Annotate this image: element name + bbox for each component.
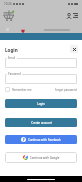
staticText: Remember me (12, 88, 32, 92)
staticText: Login (37, 102, 45, 106)
staticText: Continue with Facebook (28, 138, 61, 142)
staticText: Continue with Google (30, 156, 60, 160)
button[interactable]: Menu (72, 12, 79, 19)
staticText: Email (8, 56, 16, 60)
button[interactable]: Account (65, 12, 72, 19)
staticText: 10:26 (4, 2, 12, 6)
button[interactable]: forgot password (55, 88, 77, 92)
button[interactable]: Home (3, 10, 14, 21)
button[interactable] (5, 58, 77, 68)
button[interactable]: Continue with Facebook (5, 135, 77, 144)
staticText: Create account (31, 121, 52, 125)
button[interactable]: Create account (5, 118, 77, 127)
staticText: Login (5, 47, 18, 53)
button[interactable]: Remember me (5, 87, 32, 92)
staticText: Password (8, 72, 21, 76)
button[interactable]: Close (70, 45, 78, 53)
button[interactable]: Login (5, 99, 77, 108)
button[interactable] (5, 74, 77, 84)
button[interactable]: Continue with Google (5, 152, 77, 163)
